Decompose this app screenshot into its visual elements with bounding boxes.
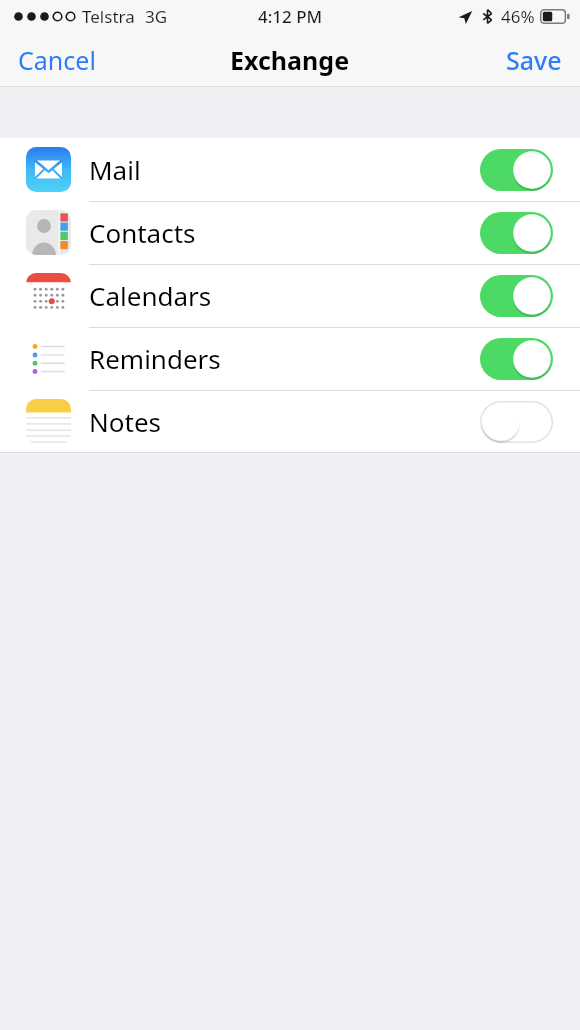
staticText: Exchange — [230, 43, 350, 77]
staticText: 3G — [145, 5, 168, 28]
button[interactable]: Off — [480, 401, 553, 443]
button[interactable]: Calendars — [0, 264, 580, 327]
button[interactable]: Contacts — [0, 201, 580, 264]
button[interactable]: On — [480, 275, 553, 317]
staticText: 46% — [501, 5, 535, 28]
staticText: Mail — [89, 152, 141, 187]
staticText: Cancel — [18, 43, 96, 77]
staticText: Calendars — [89, 278, 212, 313]
staticText: Notes — [89, 404, 161, 439]
staticText: Telstra — [82, 5, 135, 28]
button[interactable]: On — [480, 149, 553, 191]
staticText: Contacts — [89, 215, 196, 250]
button[interactable]: Save — [488, 33, 580, 87]
staticText: Save — [506, 43, 562, 77]
button[interactable]: Reminders — [0, 327, 580, 390]
staticText: Reminders — [89, 341, 221, 376]
button[interactable]: Mail — [0, 138, 580, 201]
button[interactable]: Cancel — [0, 33, 114, 87]
button[interactable]: On — [480, 338, 553, 380]
staticText: 4:12 PM — [258, 5, 323, 28]
button[interactable]: Notes — [0, 390, 580, 453]
button[interactable]: On — [480, 212, 553, 254]
